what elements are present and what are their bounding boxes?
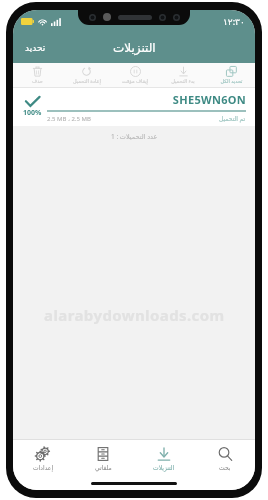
staticText: 2.5 MB ، 2.5 MB xyxy=(47,115,91,123)
staticText: عدد التحميلات : 1 xyxy=(111,132,158,141)
button[interactable]: تحديد الكل xyxy=(207,63,255,87)
button[interactable]: حذف xyxy=(13,63,62,87)
button[interactable]: 100% xyxy=(13,88,255,126)
staticText: تحديد xyxy=(25,43,46,53)
staticText: بدء التحميل xyxy=(171,78,195,85)
staticText: التنزيلات xyxy=(113,41,156,55)
staticText: تحديد الكل xyxy=(220,78,243,85)
staticText: حذف xyxy=(32,78,43,84)
staticText: 100% xyxy=(23,108,42,118)
staticText: SHE5WN6ON xyxy=(47,92,246,107)
staticText: إيقاف مؤقت xyxy=(122,78,148,85)
button[interactable]: التنزيلات xyxy=(133,440,194,476)
staticText: إعدادات xyxy=(33,464,54,471)
staticText: التنزيلات xyxy=(153,464,175,471)
button[interactable]: تحديد xyxy=(13,32,58,63)
staticText: ملفاتي xyxy=(95,464,112,471)
button[interactable]: ملفاتي xyxy=(73,440,133,476)
button[interactable]: إعدادات xyxy=(13,440,73,476)
button[interactable]: إيقاف مؤقت xyxy=(111,63,159,87)
staticText: بحث xyxy=(219,464,231,471)
staticText: ١٢:٣٠ xyxy=(223,15,245,27)
staticText: إعادة التحميل xyxy=(73,78,101,85)
staticText: alarabydownloads.com xyxy=(44,305,225,325)
button[interactable]: إعادة التحميل xyxy=(62,63,111,87)
staticText: تم التحميل xyxy=(219,115,246,123)
button[interactable]: بدء التحميل xyxy=(159,63,207,87)
button[interactable]: بحث xyxy=(194,440,255,476)
